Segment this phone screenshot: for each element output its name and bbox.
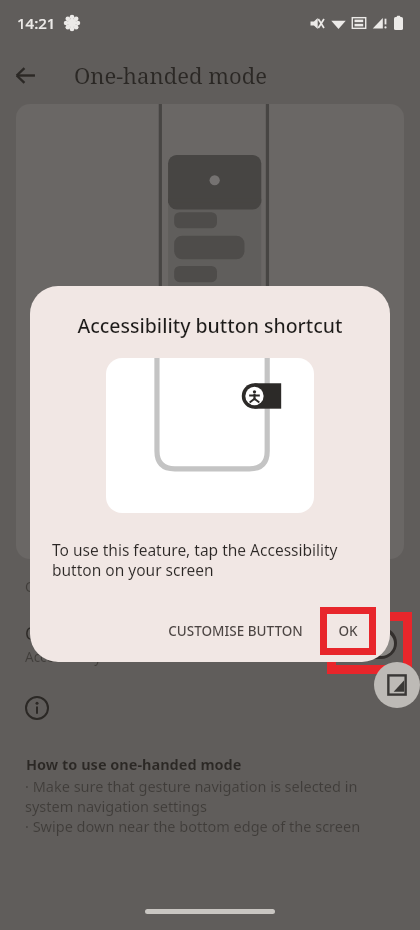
staticText: Accessibility button: [25, 648, 148, 666]
staticText: OK: [338, 622, 358, 640]
staticText: To use this feature, tap the Accessibili…: [52, 539, 366, 581]
button[interactable]: CUSTOMISE BUTTON: [156, 612, 315, 650]
staticText: One-handed mode: [74, 60, 267, 90]
staticText: · Swipe down near the bottom edge of the…: [25, 816, 361, 836]
staticText: Options: [25, 577, 78, 596]
staticText: One-handed mode shortcut: [25, 621, 254, 645]
button[interactable]: OK: [320, 607, 376, 655]
button[interactable]: One-handed mode: [374, 662, 420, 708]
button[interactable]: Back: [0, 50, 50, 100]
button[interactable]: One-handed mode shortcut: [0, 612, 420, 674]
button[interactable]: One-handed mode shortcut toggle: [327, 612, 412, 674]
staticText: · Make sure that gesture navigation is s…: [25, 776, 405, 816]
staticText: 14:21: [17, 13, 56, 33]
staticText: Accessibility button shortcut: [30, 312, 390, 339]
staticText: How to use one-handed mode: [26, 754, 242, 774]
staticText: CUSTOMISE BUTTON: [168, 622, 303, 640]
